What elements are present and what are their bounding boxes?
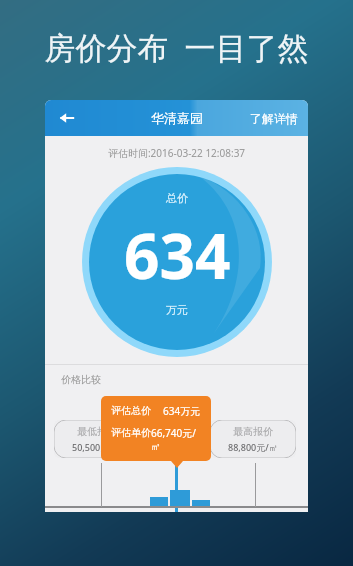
staticText: 50,500元/㎡ [72, 441, 122, 453]
staticText: 634万元 [163, 404, 201, 418]
staticText: 最高报价 [233, 425, 273, 438]
staticText: 66,740元/㎡ [151, 426, 201, 453]
button[interactable]: 最高报价 [210, 420, 296, 458]
staticText: 了解详情 [250, 111, 298, 126]
staticText: 华清嘉园 [151, 110, 203, 126]
button[interactable]: Back [53, 104, 81, 132]
button[interactable]: 最低报价 [54, 420, 140, 458]
staticText: 总价 [166, 191, 188, 205]
staticText: 万元 [166, 303, 188, 317]
button[interactable]: 评估总价 [101, 396, 211, 461]
staticText: 价格比较 [61, 373, 101, 386]
button[interactable]: 了解详情 [240, 103, 308, 134]
staticText: 88,800元/㎡ [228, 441, 278, 453]
staticText: 评估单价 [111, 426, 151, 439]
staticText: 最低报价 [77, 425, 117, 438]
staticText: 评估总价 [111, 404, 151, 417]
staticText: 房价分布 一目了然 [0, 26, 353, 68]
staticText: 634 [124, 213, 231, 297]
staticText: 评估时间:2016-03-22 12:08:37 [45, 146, 308, 160]
